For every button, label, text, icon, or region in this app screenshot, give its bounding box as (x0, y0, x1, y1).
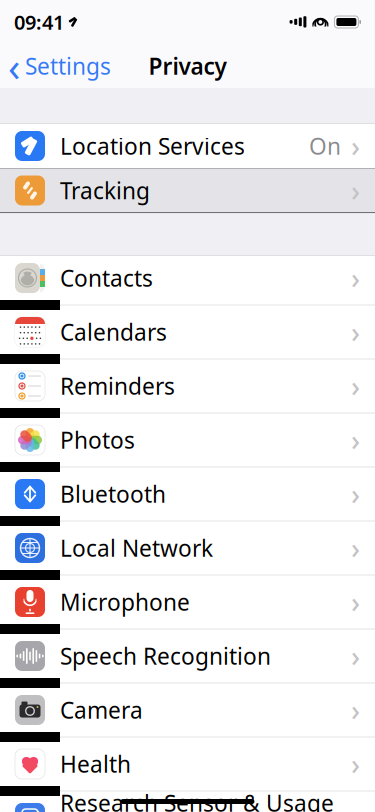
button[interactable]: ‹ (0, 44, 111, 88)
staticText: Tracking (60, 175, 150, 205)
button[interactable]: Research Sensor & Usage Data (0, 796, 375, 812)
button[interactable]: Calendars (0, 310, 375, 364)
staticText: Health (60, 749, 131, 779)
staticText: Photos (60, 425, 135, 455)
button[interactable]: Contacts (0, 256, 375, 310)
staticText: › (351, 313, 360, 351)
staticText: Calendars (60, 317, 167, 347)
button[interactable]: Local Network (0, 526, 375, 580)
staticText: › (351, 259, 360, 297)
staticText: Microphone (60, 587, 190, 617)
button[interactable]: Tracking (0, 168, 375, 213)
staticText: Bluetooth (60, 479, 166, 509)
button[interactable]: Bluetooth (0, 472, 375, 526)
staticText: On (309, 131, 341, 161)
staticText: › (351, 745, 360, 783)
staticText: Location Services (60, 131, 245, 161)
staticText: › (351, 691, 360, 729)
staticText: 09:41 (14, 9, 64, 35)
staticText: › (351, 637, 360, 675)
button[interactable]: Speech Recognition (0, 634, 375, 688)
staticText: Privacy (148, 51, 226, 81)
staticText: Local Network (60, 533, 213, 563)
staticText: › (351, 127, 360, 165)
staticText: › (351, 367, 360, 405)
button[interactable]: Camera (0, 688, 375, 742)
staticText: Reminders (60, 371, 175, 401)
button[interactable]: Location Services (0, 124, 375, 168)
button[interactable]: Microphone (0, 580, 375, 634)
button[interactable]: Reminders (0, 364, 375, 418)
staticText: › (351, 583, 360, 621)
staticText: › (351, 421, 360, 459)
staticText: Research Sensor & Usage Data (60, 788, 334, 812)
staticText: › (351, 529, 360, 567)
staticText: › (351, 475, 360, 513)
staticText: Speech Recognition (60, 641, 271, 671)
button[interactable]: Health (0, 742, 375, 796)
button[interactable]: Photos (0, 418, 375, 472)
staticText: Settings (25, 51, 111, 81)
staticText: › (351, 172, 360, 209)
staticText: Contacts (60, 263, 153, 293)
staticText: Camera (60, 695, 143, 725)
staticText: ‹ (8, 39, 20, 92)
